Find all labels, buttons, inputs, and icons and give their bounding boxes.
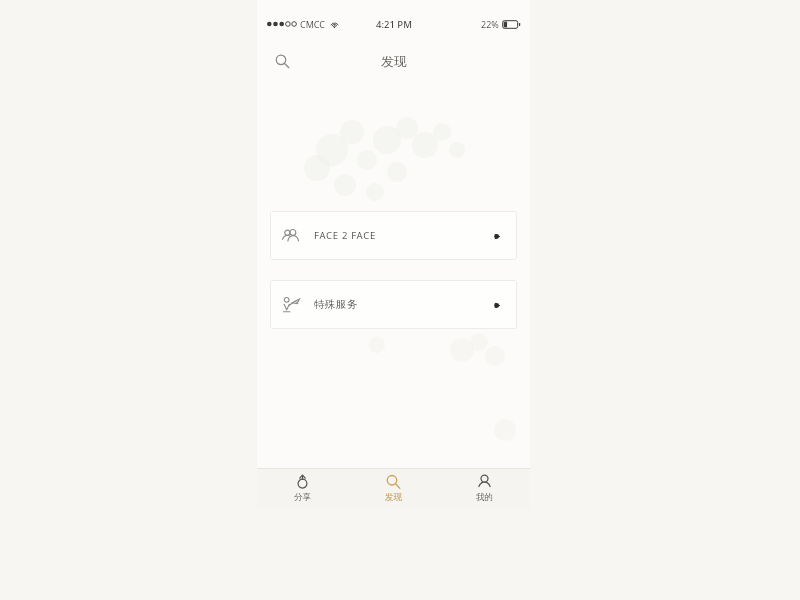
button[interactable]: 分享 <box>257 469 348 508</box>
button[interactable]: 发现 <box>348 469 439 508</box>
staticText: 我的 <box>476 492 493 503</box>
staticText: CMCC <box>300 18 326 30</box>
staticText: 特殊服务 <box>314 298 358 311</box>
button[interactable]: 特殊服务 <box>270 280 517 329</box>
button[interactable]: Search <box>267 46 297 76</box>
staticText: 发现 <box>385 492 402 503</box>
staticText: 发现 <box>381 53 407 69</box>
staticText: 分享 <box>294 492 311 503</box>
button[interactable]: FACE 2 FACE <box>270 211 517 260</box>
staticText: 22% <box>481 18 499 30</box>
staticText: FACE 2 FACE <box>314 229 376 242</box>
button[interactable]: 我的 <box>439 469 530 508</box>
staticText: 4:21 PM <box>376 18 412 31</box>
